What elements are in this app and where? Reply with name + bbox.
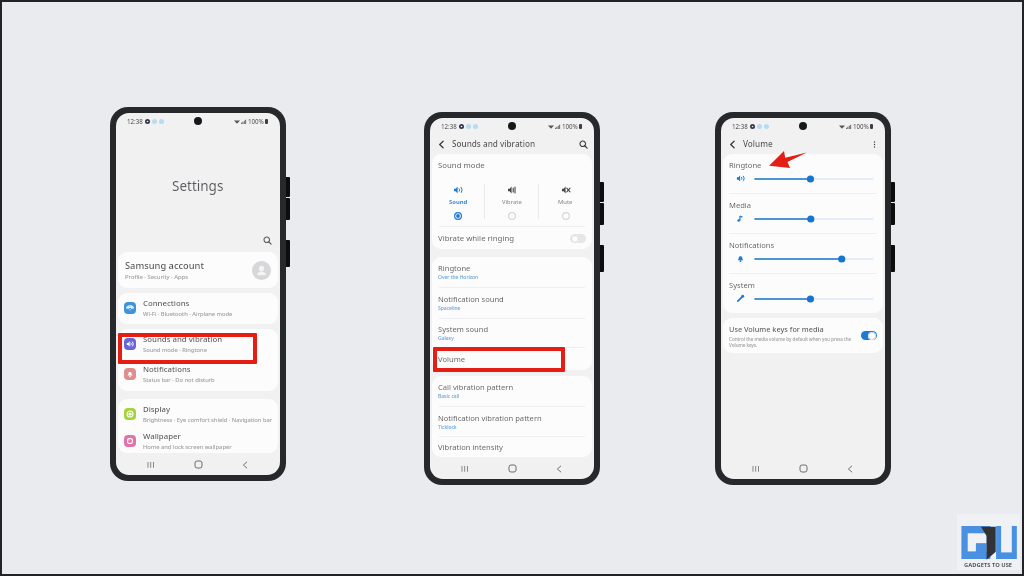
staticText: Media <box>729 200 752 210</box>
button[interactable]: Back <box>550 460 568 477</box>
button[interactable]: Vibrate <box>485 177 538 226</box>
button[interactable]: Connections <box>118 293 278 323</box>
staticText: Vibration intensity <box>438 442 503 452</box>
button[interactable]: Home <box>794 460 812 477</box>
button[interactable]: Notifications <box>723 234 883 273</box>
button[interactable]: More options <box>868 138 880 150</box>
button[interactable]: Vibration intensity <box>432 437 592 457</box>
button[interactable]: Mute <box>539 177 592 226</box>
button[interactable]: System sound <box>432 319 592 347</box>
staticText: Ringtone <box>438 263 471 273</box>
button[interactable]: Search <box>577 138 589 150</box>
staticText: Sound mode · Ringtone <box>143 346 207 354</box>
staticText: Volume <box>743 138 773 149</box>
staticText: Vibrate <box>502 198 522 206</box>
button[interactable]: Recent apps <box>142 456 160 473</box>
button[interactable]: System <box>723 274 883 313</box>
staticText: Spaceline <box>438 305 461 312</box>
staticText: Notification sound <box>438 294 504 304</box>
staticText: 100% <box>853 122 869 130</box>
staticText: Notification vibration pattern <box>438 413 542 423</box>
button[interactable]: Media <box>723 194 883 233</box>
button[interactable]: Toggle <box>861 331 877 340</box>
staticText: Basic call <box>438 393 460 400</box>
staticText: 12:38 <box>732 122 748 130</box>
button[interactable]: Notification sound <box>432 288 592 318</box>
staticText: System sound <box>438 324 489 334</box>
button[interactable]: Back <box>435 138 447 150</box>
button[interactable]: Recent apps <box>747 460 765 477</box>
button[interactable]: Call vibration pattern <box>432 376 592 406</box>
button[interactable]: Notifications <box>118 359 278 389</box>
staticText: 12:38 <box>441 122 457 130</box>
staticText: Volume <box>438 354 466 364</box>
staticText: Samsung account <box>125 259 204 272</box>
staticText: Vibrate while ringing <box>438 233 515 244</box>
staticText: Galaxy <box>438 335 454 342</box>
staticText: Over the Horizon <box>438 274 479 281</box>
button[interactable]: Toggle <box>570 234 586 243</box>
staticText: Brightness · Eye comfort shield · Naviga… <box>143 416 273 424</box>
button[interactable]: Wallpaper <box>118 429 278 453</box>
staticText: GADGETS TO USE <box>964 561 1013 569</box>
staticText: Notifications <box>143 364 191 375</box>
button[interactable]: Search <box>261 234 274 247</box>
button[interactable]: Recent apps <box>456 460 474 477</box>
staticText: 100% <box>562 122 578 130</box>
staticText: System <box>729 280 755 290</box>
staticText: Profile · Security · Apps <box>125 273 189 281</box>
button[interactable]: Home <box>503 460 521 477</box>
staticText: Sound mode <box>438 160 485 171</box>
button[interactable]: Ringtone <box>723 154 883 193</box>
staticText: Status bar · Do not disturb <box>143 376 215 384</box>
staticText: Display <box>143 404 171 415</box>
button[interactable]: Notification vibration pattern <box>432 407 592 436</box>
staticText: Sound <box>449 198 468 206</box>
button[interactable]: Sound <box>432 177 484 226</box>
staticText: Ticklock <box>438 424 457 431</box>
staticText: Call vibration pattern <box>438 382 514 392</box>
staticText: Use Volume keys for media <box>729 324 824 334</box>
button[interactable]: Back <box>236 456 254 473</box>
staticText: 100% <box>248 117 264 125</box>
staticText: Notifications <box>729 240 775 250</box>
button[interactable]: Ringtone <box>432 257 592 287</box>
button[interactable]: Sounds and vibration <box>118 329 278 359</box>
staticText: Wallpaper <box>143 431 181 442</box>
button[interactable]: Use Volume keys for media <box>723 318 883 353</box>
button[interactable]: Home <box>189 456 207 473</box>
button[interactable]: Samsung account <box>118 252 278 288</box>
button[interactable]: Back <box>841 460 859 477</box>
button[interactable]: Display <box>118 399 278 429</box>
staticText: Control the media volume by default when… <box>729 336 856 348</box>
button[interactable]: Volume <box>432 348 592 370</box>
staticText: Home and lock screen wallpaper <box>143 443 232 451</box>
staticText: Settings <box>172 177 224 195</box>
button[interactable]: Vibrate while ringing <box>432 227 592 249</box>
staticText: 12:38 <box>127 117 143 125</box>
staticText: Sounds and vibration <box>452 138 536 149</box>
staticText: Mute <box>558 198 573 206</box>
button[interactable]: Back <box>726 138 738 150</box>
staticText: Connections <box>143 298 190 309</box>
staticText: Ringtone <box>729 160 762 170</box>
staticText: Sounds and vibration <box>143 334 223 345</box>
staticText: Wi-Fi · Bluetooth · Airplane mode <box>143 310 233 318</box>
